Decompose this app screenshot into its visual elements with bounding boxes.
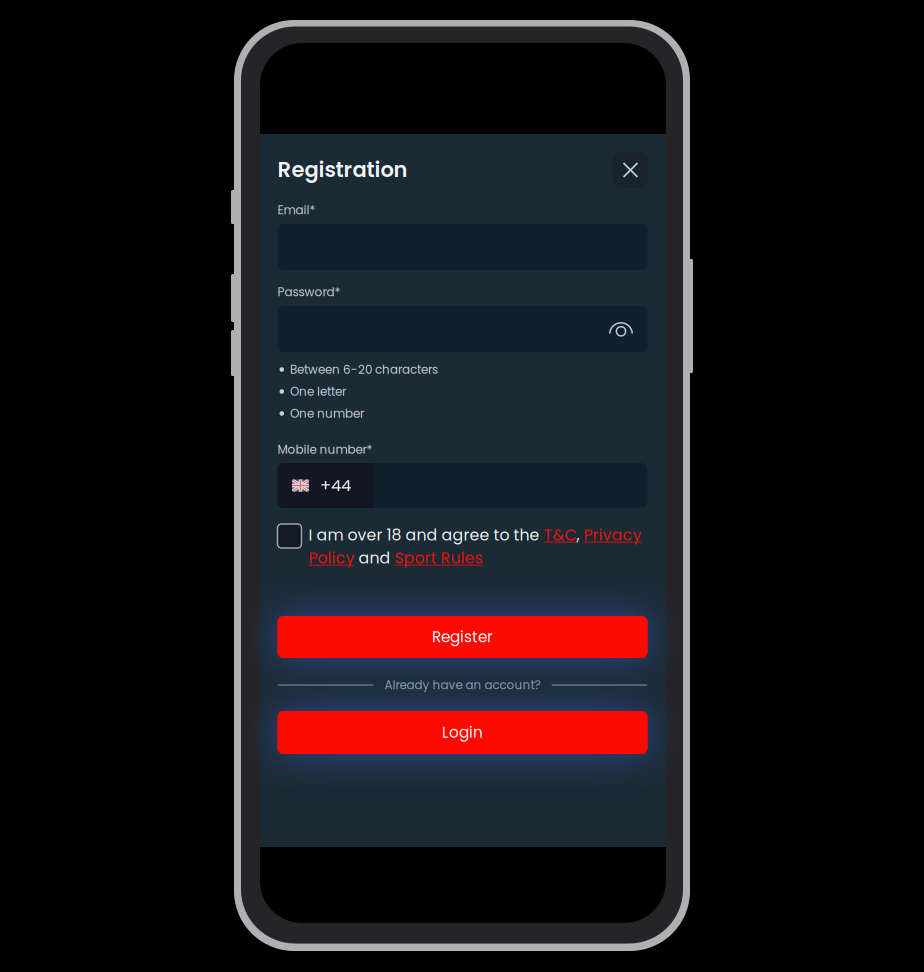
- button[interactable]: Show password: [277, 306, 647, 352]
- staticText: Register: [432, 626, 493, 648]
- button[interactable]: Close: [612, 152, 648, 188]
- staticText: Registration: [277, 155, 407, 184]
- staticText: Already have an account?: [384, 677, 540, 693]
- staticText: One number: [290, 405, 364, 422]
- button[interactable]: Register: [277, 616, 647, 658]
- staticText: Password*: [277, 284, 340, 300]
- button[interactable]: Country code, United Kingdom, +44: [277, 463, 374, 508]
- staticText: +44: [320, 474, 351, 497]
- staticText: Mobile number*: [277, 441, 372, 458]
- staticText: Email*: [277, 202, 315, 218]
- button[interactable]: I am over 18 and agree to the terms: [277, 524, 301, 548]
- staticText: One letter: [290, 383, 346, 400]
- staticText: Between 6-20 characters: [290, 361, 438, 378]
- button[interactable]: Login: [277, 711, 647, 754]
- staticText: I am over 18 and agree to the T&C, Priva…: [308, 524, 641, 569]
- staticText: Login: [442, 722, 483, 743]
